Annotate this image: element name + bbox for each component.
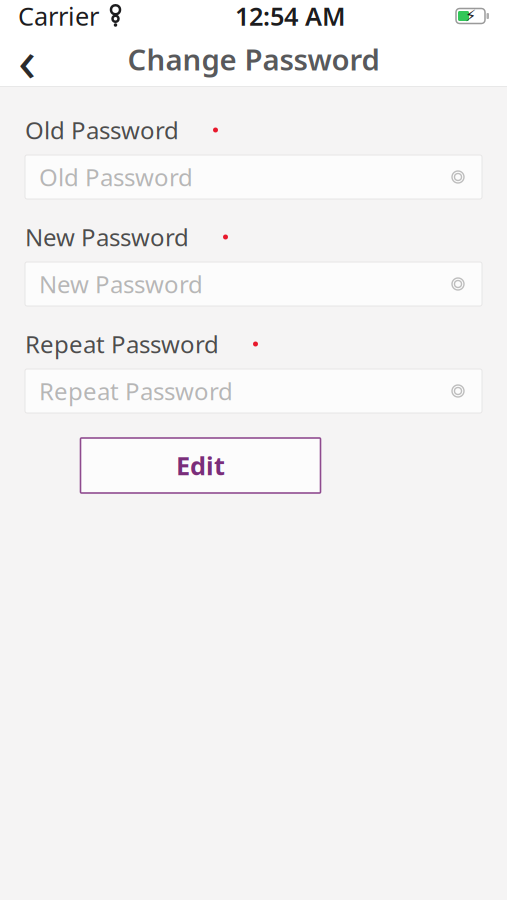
staticText: Repeat Password — [25, 328, 219, 360]
button[interactable]: Show password — [438, 155, 478, 199]
button[interactable]: Edit — [80, 438, 320, 493]
staticText: Old Password — [25, 114, 179, 146]
button[interactable]: Show password — [438, 369, 478, 413]
staticText: New Password — [25, 221, 189, 253]
staticText: 12:54 AM — [235, 0, 346, 33]
button[interactable]: Back — [0, 32, 54, 86]
staticText: Old Password — [39, 161, 193, 193]
staticText: ‹ — [18, 20, 36, 98]
staticText: New Password — [39, 268, 203, 300]
staticText: Edit — [176, 449, 225, 482]
staticText: ⚡︎ — [465, 7, 476, 25]
button[interactable]: Show password — [438, 262, 478, 306]
staticText: Carrier — [18, 0, 99, 33]
staticText: Change Password — [127, 39, 379, 78]
staticText: Repeat Password — [39, 375, 233, 407]
